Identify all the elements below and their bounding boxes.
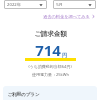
button[interactable]: 5月 <box>53 0 96 9</box>
button[interactable]: 2022年 <box>4 0 47 9</box>
staticText: ご利用のプラン <box>7 92 40 98</box>
button[interactable]: ご利用のプラン <box>3 86 97 100</box>
staticText: 円 <box>62 52 67 58</box>
staticText: ご請求金額 <box>34 30 67 38</box>
staticText: 過去の料金を調べてみる <box>43 14 90 19</box>
staticText: 2022年 <box>7 2 21 8</box>
staticText: 使用電力量：25kWh <box>32 72 69 77</box>
staticText: 5月 <box>56 2 63 8</box>
button[interactable]: 過去の料金を調べてみる <box>42 13 96 20</box>
staticText: 714 <box>35 40 61 60</box>
staticText: (うち消費税相当額64円) <box>28 64 72 69</box>
